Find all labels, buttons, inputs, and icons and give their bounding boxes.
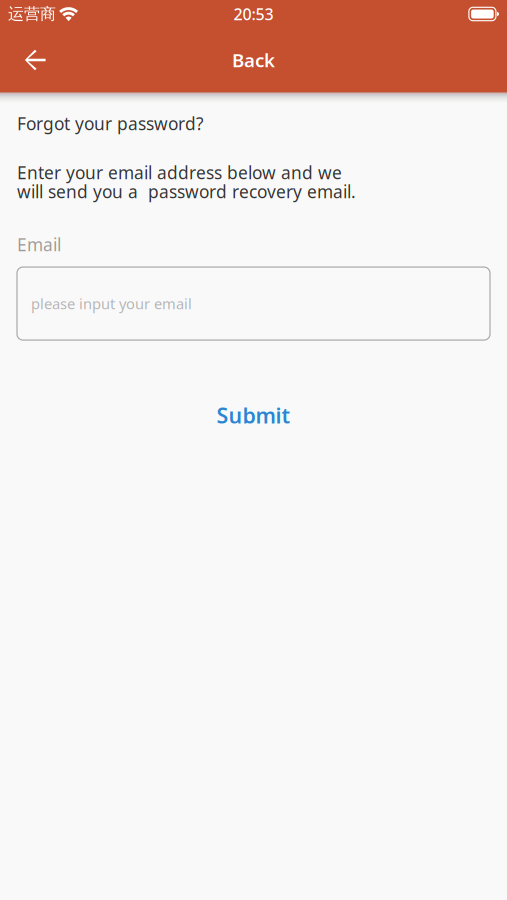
staticText: Submit [216, 401, 290, 429]
staticText: Enter your email address below and we wi… [17, 161, 356, 203]
button[interactable]: Back [11, 36, 59, 84]
button[interactable]: please input your email [17, 267, 490, 340]
staticText: 运营商 [8, 4, 56, 24]
staticText: Back [232, 48, 275, 72]
staticText: Forgot your password? [17, 112, 204, 135]
staticText: 20:53 [233, 3, 273, 25]
staticText: please input your email [31, 294, 192, 313]
staticText: Email [17, 233, 61, 256]
button[interactable]: Submit [17, 401, 490, 429]
